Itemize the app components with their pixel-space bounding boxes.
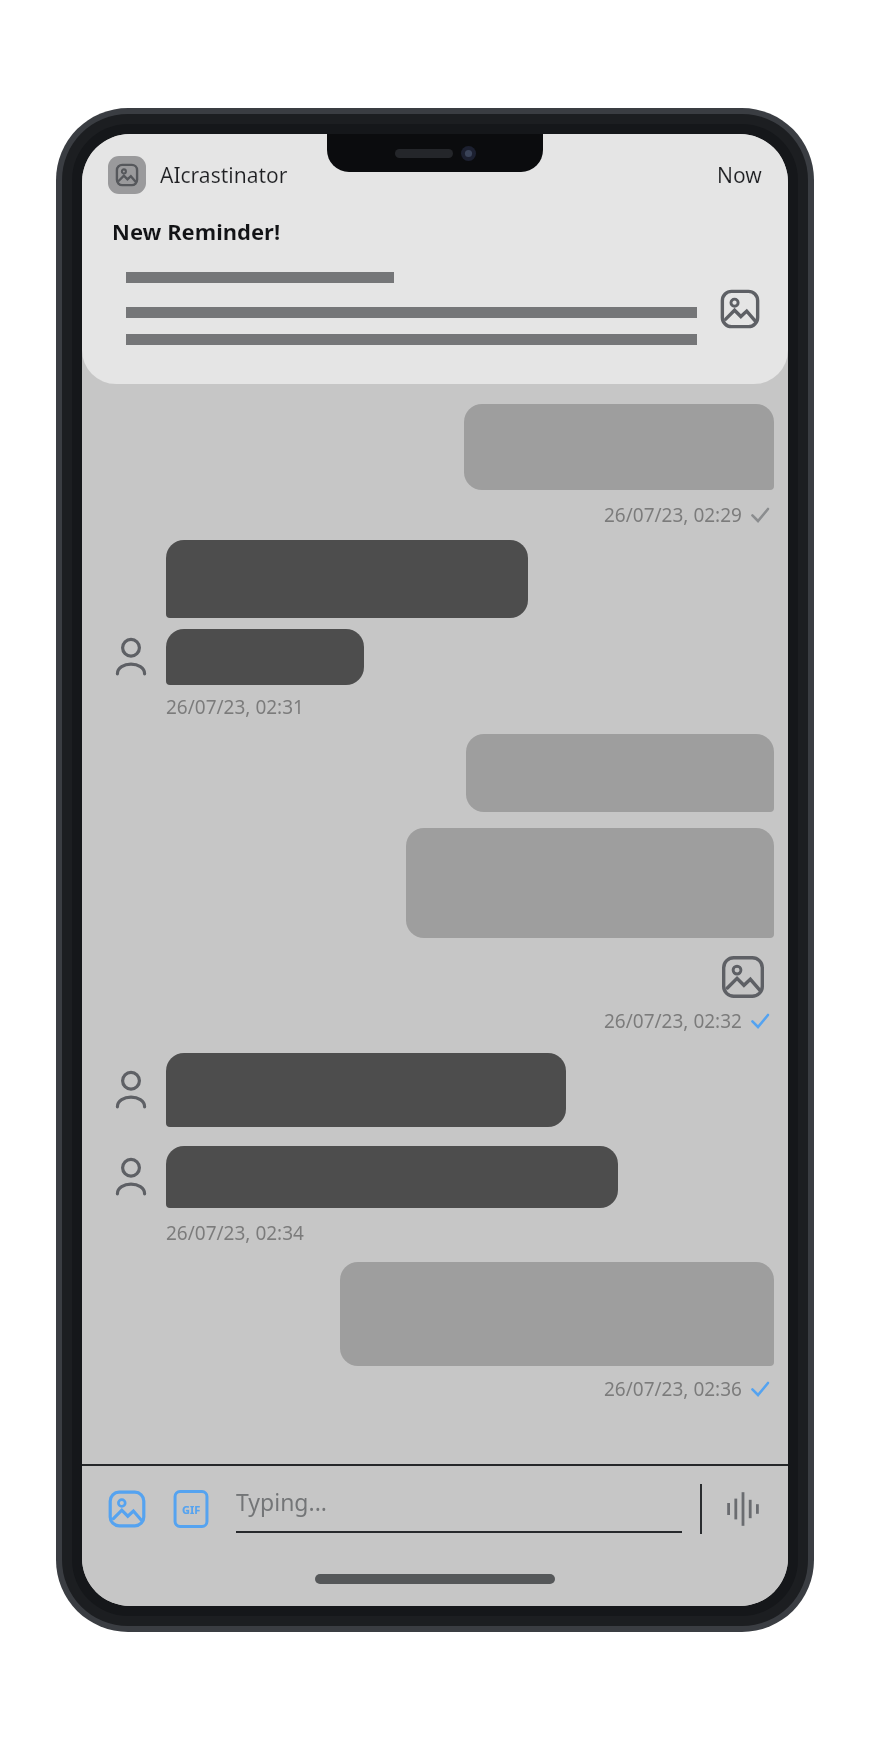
button[interactable]: Image message (718, 952, 768, 1002)
button[interactable] (166, 540, 528, 618)
button[interactable]: Send image (104, 1486, 150, 1532)
staticText: New Reminder! (112, 216, 281, 246)
button[interactable]: AIcrastinator (82, 134, 788, 384)
button[interactable]: Send GIF (168, 1486, 214, 1532)
button[interactable]: Voice message (720, 1486, 766, 1532)
staticText: Typing... (236, 1486, 327, 1517)
button[interactable]: Image attachment (718, 287, 762, 331)
staticText: Now (717, 161, 762, 190)
button[interactable] (466, 734, 774, 812)
button[interactable] (166, 1053, 566, 1127)
staticText: 26/07/23, 02:31 (166, 694, 304, 720)
staticText: GIF (182, 1502, 201, 1517)
staticText: 26/07/23, 02:32 (604, 1008, 742, 1034)
staticText: 26/07/23, 02:36 (604, 1376, 742, 1402)
staticText: 26/07/23, 02:29 (604, 502, 742, 528)
button[interactable] (166, 1146, 618, 1208)
staticText: AIcrastinator (160, 161, 288, 190)
button[interactable] (166, 629, 364, 685)
button[interactable] (464, 404, 774, 490)
staticText: 26/07/23, 02:34 (166, 1220, 304, 1246)
